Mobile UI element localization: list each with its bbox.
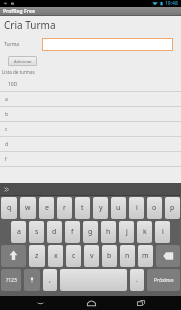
staticText: Próximo [154, 277, 174, 284]
button[interactable]: j [119, 221, 134, 243]
staticText: f [71, 227, 74, 237]
button[interactable]: b [102, 245, 117, 267]
button[interactable]: o [147, 197, 162, 219]
button[interactable]: v [84, 245, 99, 267]
button[interactable]: x [48, 245, 63, 267]
staticText: Cria Turma [4, 18, 56, 32]
staticText: t [81, 203, 84, 213]
button[interactable]: 10D [0, 77, 181, 92]
button[interactable]: ProfReg Free [0, 7, 181, 15]
staticText: ?123 [6, 277, 17, 284]
button[interactable]: Voice input [24, 269, 40, 291]
button[interactable]: h [101, 221, 116, 243]
staticText: c [5, 126, 8, 133]
staticText: m [142, 251, 149, 261]
button[interactable]: p [165, 197, 180, 219]
staticText: p [170, 203, 175, 213]
staticText: , [49, 275, 51, 285]
button[interactable] [60, 269, 127, 291]
button[interactable]: w [20, 197, 36, 219]
staticText: . [136, 275, 138, 285]
staticText: 19:48 [165, 0, 178, 7]
button[interactable]: t [75, 197, 90, 219]
staticText: j [126, 227, 128, 237]
staticText: y [99, 203, 103, 213]
button[interactable]: . [130, 269, 144, 291]
staticText: s [35, 227, 39, 237]
button[interactable]: Recent apps [130, 296, 152, 310]
staticText: o [152, 203, 157, 213]
button[interactable]: Backspace [156, 245, 180, 267]
staticText: x [54, 251, 58, 261]
button[interactable]: More suggestions [2, 185, 11, 194]
button[interactable]: r [57, 197, 72, 219]
button[interactable]: e [39, 197, 54, 219]
staticText: f [5, 156, 7, 163]
button[interactable]: a [0, 92, 181, 107]
button[interactable]: d [0, 137, 181, 152]
button[interactable]: q [1, 197, 17, 219]
staticText: a [5, 96, 8, 103]
button[interactable]: n [120, 245, 135, 267]
button[interactable]: Shift [1, 245, 26, 267]
button[interactable]: , [43, 269, 57, 291]
button[interactable]: l [155, 221, 170, 243]
staticText: i [136, 203, 138, 213]
staticText: 10D [8, 81, 18, 88]
button[interactable]: k [137, 221, 152, 243]
button[interactable]: Home [80, 296, 102, 310]
button[interactable] [42, 38, 173, 51]
staticText: n [125, 251, 130, 261]
staticText: w [25, 203, 31, 213]
button[interactable]: ?123 [1, 269, 21, 291]
button[interactable]: c [0, 122, 181, 137]
button[interactable]: Próximo [147, 269, 180, 291]
staticText: e [45, 203, 49, 213]
staticText: k [143, 227, 147, 237]
staticText: d [52, 227, 57, 237]
button[interactable]: Back [29, 296, 51, 310]
staticText: b [107, 251, 112, 261]
staticText: Turma [4, 41, 20, 48]
button[interactable]: b [0, 107, 181, 122]
staticText: Lista de turmas [2, 69, 35, 75]
staticText: c [72, 251, 76, 261]
staticText: h [106, 227, 111, 237]
button[interactable]: u [111, 197, 126, 219]
button[interactable]: f [65, 221, 80, 243]
button[interactable]: f [0, 152, 181, 167]
button[interactable]: Adicionar [8, 56, 37, 66]
button[interactable]: i [129, 197, 144, 219]
button[interactable]: a [11, 221, 26, 243]
staticText: v [90, 251, 94, 261]
staticText: a [17, 227, 21, 237]
button[interactable]: z [29, 245, 45, 267]
button[interactable]: c [66, 245, 81, 267]
staticText: b [5, 111, 9, 118]
staticText: g [88, 227, 93, 237]
button[interactable]: m [138, 245, 153, 267]
staticText: Adicionar [14, 59, 32, 64]
staticText: z [35, 251, 39, 261]
button[interactable]: y [93, 197, 108, 219]
staticText: q [7, 203, 12, 213]
staticText: u [116, 203, 121, 213]
button[interactable]: d [47, 221, 62, 243]
staticText: l [162, 227, 164, 237]
staticText: d [5, 141, 9, 148]
staticText: ProfReg Free [3, 8, 35, 15]
staticText: r [63, 203, 66, 213]
button[interactable]: g [83, 221, 98, 243]
button[interactable]: s [29, 221, 44, 243]
